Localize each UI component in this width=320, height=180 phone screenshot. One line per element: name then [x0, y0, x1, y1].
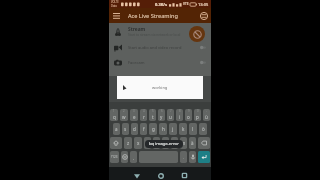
staticText: 8 [179, 109, 181, 113]
staticText: , [133, 155, 134, 160]
button[interactable]: 1 [110, 109, 118, 121]
staticText: bq image-error [149, 141, 179, 147]
staticText: Data [111, 4, 117, 8]
staticText: j [172, 126, 174, 132]
button[interactable]: Back [131, 170, 142, 180]
button[interactable]: 4 [140, 109, 147, 121]
button[interactable]: s [122, 123, 129, 135]
staticText: t [152, 114, 154, 120]
staticText: 1 [113, 109, 115, 113]
staticText: x [137, 140, 140, 146]
button[interactable]: - [203, 109, 210, 121]
staticText: 2 [123, 109, 125, 113]
button[interactable]: Backspace [198, 137, 210, 149]
staticText: working [152, 85, 168, 90]
button[interactable]: a [113, 123, 120, 135]
staticText: p [196, 114, 199, 120]
button[interactable]: 5 [149, 109, 156, 121]
staticText: y [160, 114, 163, 120]
button[interactable]: ö [199, 123, 207, 135]
staticText: z [127, 140, 130, 146]
staticText: 0 [197, 109, 199, 113]
staticText: a [115, 126, 118, 132]
staticText: i [179, 114, 181, 120]
staticText: e [133, 114, 136, 120]
button[interactable]: Start streaming [189, 26, 205, 42]
staticText: w [122, 114, 126, 120]
button[interactable]: Home [155, 170, 166, 180]
staticText: Ace Live Streaming [128, 12, 178, 20]
staticText: 0.3K/s [155, 2, 168, 7]
staticText: 5 [152, 109, 154, 113]
button[interactable]: l [189, 123, 197, 135]
staticText: v [155, 140, 158, 146]
button[interactable]: Emoji [121, 151, 128, 163]
staticText: Stream [128, 26, 146, 33]
button[interactable]: Stream [109, 23, 211, 40]
button[interactable]: . [180, 151, 187, 163]
staticText: Start to stream via network or local [128, 33, 181, 37]
staticText: 6 [161, 109, 163, 113]
staticText: 3 [133, 109, 135, 113]
staticText: d [133, 126, 136, 132]
button[interactable]: c [144, 137, 151, 149]
button[interactable]: Facecam [109, 55, 211, 70]
staticText: ä [191, 140, 194, 146]
button[interactable]: 9 [185, 109, 192, 121]
staticText: . [183, 155, 184, 160]
button[interactable]: Start audio and video record [109, 40, 211, 55]
staticText: k [182, 126, 185, 132]
staticText: VOLTE [111, 0, 119, 4]
staticText: r [143, 114, 145, 120]
button[interactable]: n [171, 137, 178, 149]
staticText: c [146, 140, 149, 146]
button[interactable]: Recent apps [179, 170, 190, 180]
button[interactable]: 3 [130, 109, 138, 121]
staticText: 13:05 [198, 2, 209, 7]
button[interactable]: More options [196, 8, 211, 23]
staticText: o [187, 114, 190, 120]
button[interactable]: g [149, 123, 157, 135]
button[interactable]: j [169, 123, 177, 135]
button[interactable]: v [153, 137, 160, 149]
staticText: q [113, 114, 116, 120]
button[interactable]: 6 [158, 109, 165, 121]
staticText: l [192, 126, 194, 132]
button[interactable]: f [140, 123, 147, 135]
button[interactable]: z [124, 137, 132, 149]
button[interactable]: Voice input [189, 151, 196, 163]
button[interactable]: b [162, 137, 169, 149]
staticText: Start audio and video record [128, 45, 182, 50]
staticText: s [124, 126, 127, 132]
button[interactable]: Shift [110, 137, 122, 149]
button[interactable]: x [134, 137, 142, 149]
button[interactable]: m [180, 137, 187, 149]
button[interactable]: 0 [194, 109, 201, 121]
staticText: h [162, 126, 165, 132]
staticText: u [169, 114, 172, 120]
staticText: 7 [170, 109, 172, 113]
button[interactable]: 2 [120, 109, 128, 121]
staticText: ö [202, 126, 205, 132]
button[interactable]: 7 [167, 109, 174, 121]
button[interactable]: ä [189, 137, 196, 149]
button[interactable]: k [179, 123, 187, 135]
staticText: - [206, 109, 207, 113]
staticText: Facecam [128, 60, 145, 65]
staticText: 4 [143, 109, 145, 113]
staticText: b [164, 140, 167, 146]
button[interactable]: Enter [198, 151, 210, 163]
staticText: ?123 [111, 155, 118, 159]
button[interactable]: 8 [176, 109, 183, 121]
staticText: m [181, 140, 186, 146]
staticText: g [152, 126, 155, 132]
button[interactable]: , [130, 151, 137, 163]
button[interactable]: d [131, 123, 138, 135]
staticText: VTE [183, 2, 189, 6]
button[interactable]: ?123 [110, 151, 119, 163]
staticText: f [143, 126, 145, 132]
button[interactable]: Open navigation menu [109, 8, 124, 23]
staticText: ü [205, 114, 208, 120]
button[interactable]: h [159, 123, 167, 135]
